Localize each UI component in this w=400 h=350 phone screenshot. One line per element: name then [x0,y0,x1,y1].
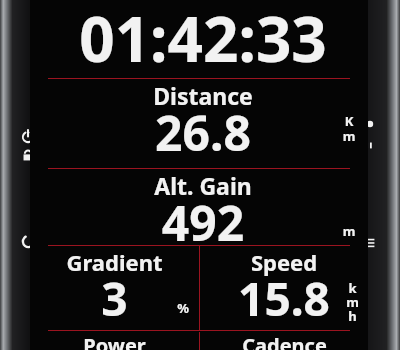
button[interactable]: Power [20,128,36,144]
button[interactable]: Speed [200,247,368,331]
staticText: 3 [44,267,185,330]
staticText: Alt. Gain [43,170,363,201]
staticText: m [340,127,358,145]
staticText: K [340,112,358,130]
button[interactable]: Lock [20,147,36,163]
staticText: Power [83,332,146,350]
staticText: % [177,299,189,317]
staticText: 01:42:33 [79,0,327,78]
button[interactable]: Gradient [30,247,199,331]
button[interactable]: Menu [361,234,378,251]
button[interactable]: Start [362,120,378,136]
staticText: 492 [43,190,363,255]
button[interactable]: Lap [20,233,37,250]
staticText: m [340,222,358,240]
staticText: 15.8 [214,267,354,330]
button[interactable]: Pause [362,140,376,154]
button[interactable]: Cadence [200,332,368,350]
staticText: k m h [346,279,359,325]
button[interactable]: Power [30,332,199,350]
staticText: Speed [200,247,368,277]
button[interactable]: Distance [30,80,368,168]
button[interactable]: Alt. Gain [30,170,368,245]
staticText: Distance [43,80,363,111]
staticText: Gradient [30,247,199,277]
button[interactable]: 01:42:33 [30,0,368,78]
staticText: 26.8 [43,100,363,165]
staticText: Cadence [242,332,327,350]
